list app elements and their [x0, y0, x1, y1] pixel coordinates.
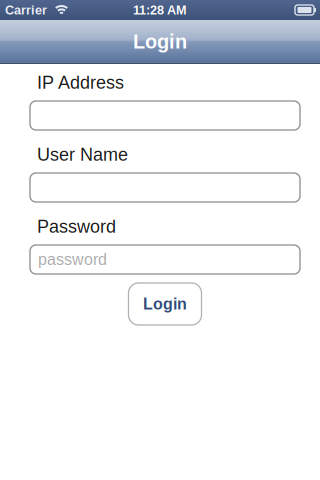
staticText: User Name: [37, 144, 128, 164]
staticText: Carrier: [5, 3, 47, 17]
staticText: IP Address: [37, 72, 124, 92]
staticText: Login: [133, 30, 187, 53]
staticText: 11:28 AM: [133, 3, 187, 17]
button[interactable]: Login: [128, 283, 201, 325]
staticText: password: [38, 251, 107, 268]
staticText: Login: [143, 295, 187, 313]
staticText: Password: [37, 216, 116, 236]
